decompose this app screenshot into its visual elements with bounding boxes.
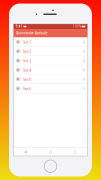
- button[interactable]: Set 3: [13, 56, 87, 65]
- button[interactable]: Set 1: [13, 37, 87, 47]
- button[interactable]: Set 5: [13, 75, 87, 84]
- button[interactable]: Set 2: [13, 47, 87, 56]
- button[interactable]: Bookmark: [38, 148, 63, 156]
- staticText: Quantitative Aptitude: [16, 31, 48, 35]
- staticText: 100%: [73, 25, 81, 28]
- staticText: 9:41: [16, 25, 23, 28]
- staticText: Set 4: [23, 67, 31, 72]
- button[interactable]: Back: [63, 148, 87, 156]
- button[interactable]: Set 4: [13, 65, 87, 75]
- staticText: Set 1: [23, 39, 31, 45]
- staticText: Set 3: [23, 58, 31, 63]
- button[interactable]: List: [13, 148, 38, 156]
- button[interactable]: Set 6: [13, 84, 87, 93]
- staticText: Set 5: [23, 76, 31, 82]
- staticText: Set 2: [23, 49, 31, 54]
- staticText: Set 6: [23, 86, 31, 91]
